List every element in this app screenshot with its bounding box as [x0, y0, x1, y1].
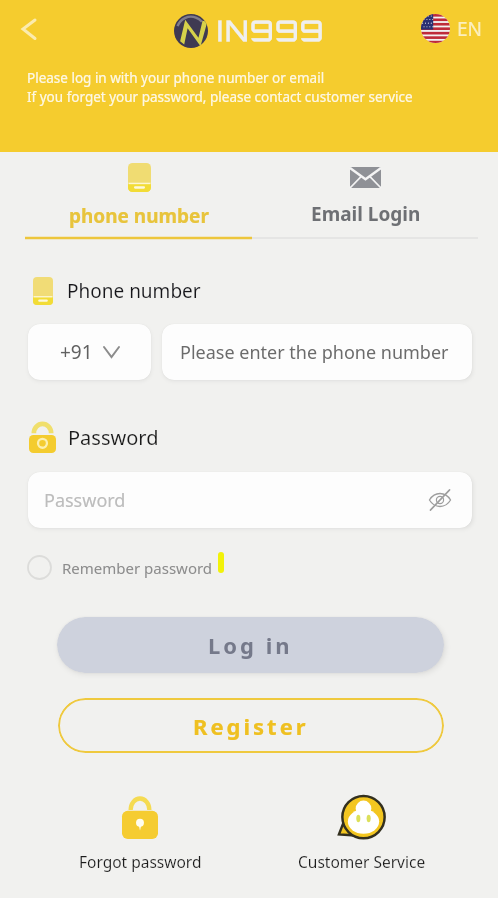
staticText: Phone number: [67, 278, 201, 304]
button[interactable]: Log in: [57, 617, 444, 673]
button[interactable]: Language EN: [421, 14, 483, 43]
button[interactable]: Please enter the phone number: [162, 324, 472, 380]
staticText: Log in: [208, 630, 293, 660]
other: Show password: [428, 488, 452, 512]
button[interactable]: +91: [28, 324, 151, 380]
staticText: Forgot password: [79, 851, 202, 872]
staticText: +91: [60, 339, 93, 365]
staticText: EN: [457, 16, 483, 42]
staticText: Remember password: [62, 558, 213, 578]
staticText: Password: [44, 488, 126, 513]
button[interactable]: Back: [10, 11, 50, 51]
button[interactable]: Customer Service: [282, 795, 442, 872]
button[interactable]: phone number: [25, 155, 253, 235]
staticText: IN999: [217, 14, 326, 48]
staticText: Email Login: [311, 201, 421, 227]
staticText: Register: [193, 711, 309, 741]
staticText: If you forget your password, please cont…: [27, 88, 413, 106]
button[interactable]: Password: [28, 472, 472, 528]
staticText: phone number: [69, 203, 209, 229]
staticText: Please log in with your phone number or …: [27, 69, 325, 87]
staticText: Password: [68, 424, 159, 451]
button[interactable]: Email Login: [253, 155, 478, 235]
staticText: Customer Service: [298, 851, 426, 872]
staticText: Please enter the phone number: [180, 340, 449, 365]
button[interactable]: Forgot password: [60, 795, 220, 872]
button[interactable]: Register: [58, 698, 444, 753]
button[interactable]: Remember password: [27, 555, 213, 580]
